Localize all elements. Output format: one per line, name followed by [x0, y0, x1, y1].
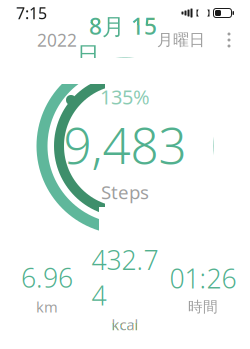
staticText: km — [36, 297, 58, 317]
button[interactable]: More options — [216, 25, 242, 55]
button[interactable]: 01:26 — [164, 256, 242, 320]
staticText: 月曜日 — [157, 30, 205, 50]
staticText: 6.96 — [21, 260, 73, 295]
button[interactable]: 6.96 — [8, 256, 86, 321]
button[interactable]: 432.74 — [86, 238, 164, 338]
staticText: 8月 15日 — [77, 11, 157, 69]
staticText: 時間 — [188, 298, 218, 316]
staticText: 01:26 — [169, 260, 236, 296]
staticText: Steps — [101, 180, 149, 204]
staticText: kcal — [111, 315, 138, 334]
staticText: 9,483 — [63, 112, 186, 178]
staticText: 135% — [100, 84, 150, 110]
staticText: 2022 — [37, 28, 77, 51]
staticText: 432.74 — [91, 242, 158, 313]
staticText: 7:15 — [16, 2, 47, 24]
